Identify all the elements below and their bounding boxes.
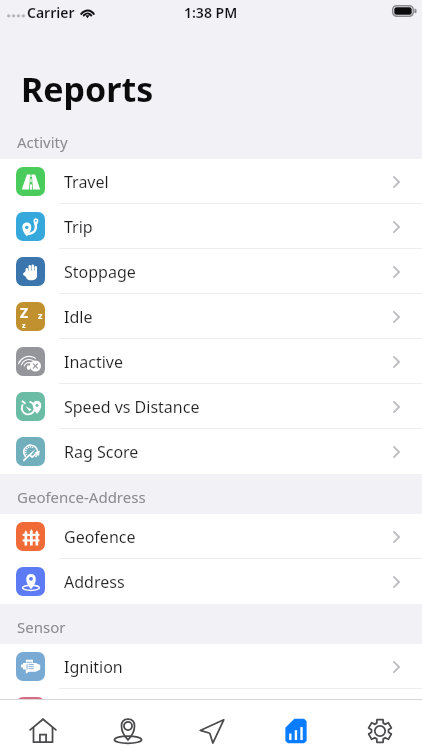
button[interactable]: Rag Score <box>0 429 422 474</box>
staticText: z <box>22 321 26 331</box>
staticText: Idle <box>64 306 93 328</box>
staticText: Reports <box>21 66 154 112</box>
button[interactable]: Places <box>85 712 170 750</box>
staticText: Speed vs Distance <box>64 396 200 418</box>
staticText: Stoppage <box>64 261 136 283</box>
staticText: Sensor <box>17 617 66 637</box>
button[interactable]: Geofence <box>0 514 422 559</box>
button[interactable]: Ignition <box>0 644 422 689</box>
button[interactable]: Speed vs Distance <box>0 384 422 429</box>
button[interactable]: Inactive <box>0 339 422 384</box>
staticText: Carrier <box>27 3 75 22</box>
button[interactable]: Trip <box>0 204 422 249</box>
staticText: Geofence <box>64 526 136 548</box>
staticText: Z <box>20 303 29 322</box>
staticText: Travel <box>64 171 109 193</box>
button[interactable]: Address <box>0 559 422 604</box>
staticText: Trip <box>64 216 93 238</box>
staticText: Rag Score <box>64 441 139 463</box>
button[interactable]: Z <box>0 294 422 339</box>
staticText: Geofence-Address <box>17 487 146 507</box>
button[interactable]: Navigate <box>170 712 254 750</box>
button[interactable]: Stoppage <box>0 249 422 294</box>
staticText: Address <box>64 571 125 593</box>
staticText: 1:38 PM <box>184 3 238 22</box>
button[interactable]: Home <box>0 712 85 750</box>
button[interactable]: Cut <box>0 689 422 734</box>
staticText: Activity <box>17 132 68 152</box>
staticText: Ignition <box>64 656 123 678</box>
button[interactable]: Travel <box>0 159 422 204</box>
staticText: z <box>38 309 43 321</box>
button[interactable]: Reports <box>254 712 338 750</box>
button[interactable]: Settings <box>338 712 422 750</box>
staticText: Inactive <box>64 351 124 373</box>
